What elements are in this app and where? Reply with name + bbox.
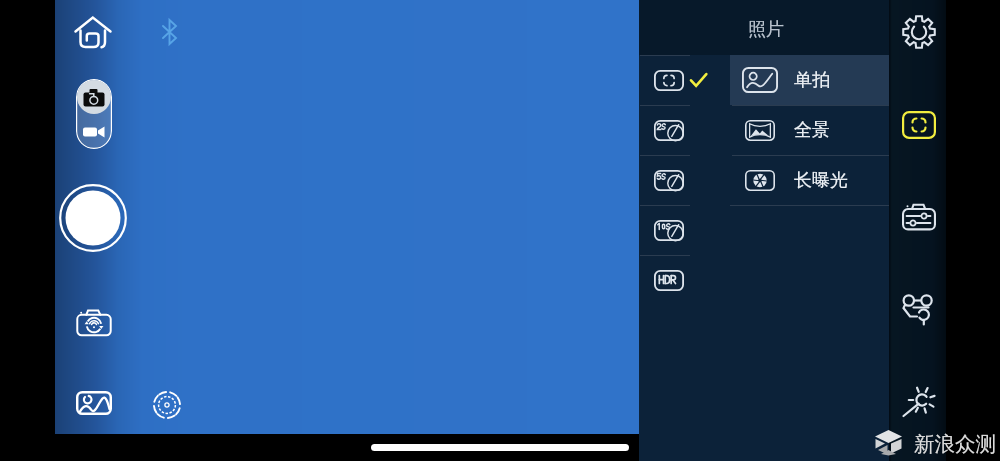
staticText: 单拍 (794, 69, 830, 92)
button[interactable]: 长曝光 (730, 155, 890, 205)
button[interactable]: Settings (892, 8, 946, 56)
other: Bluetooth (153, 15, 187, 49)
button[interactable]: Camera settings (892, 194, 946, 242)
button[interactable]: 全景 (730, 105, 890, 155)
button[interactable]: Focus (145, 383, 188, 426)
staticText: 照片 (748, 18, 784, 41)
button[interactable]: Shutter (59, 184, 127, 252)
button[interactable]: Effects (892, 379, 946, 427)
button[interactable]: Capture option (639, 255, 730, 305)
button[interactable]: Capture option (639, 155, 730, 205)
button[interactable]: Capture option (639, 55, 730, 105)
button[interactable]: Switch camera (67, 295, 121, 349)
staticText: 新浪众测 (914, 431, 996, 457)
button[interactable]: Home (72, 11, 114, 53)
button[interactable]: Aspect ratio (892, 101, 946, 149)
button[interactable]: Gallery (70, 379, 118, 427)
button[interactable]: 单拍 (730, 55, 890, 105)
button[interactable]: Capture option (639, 105, 730, 155)
button[interactable]: Photo video mode (76, 79, 112, 149)
staticText: 全景 (794, 119, 830, 142)
staticText: 长曝光 (794, 169, 848, 192)
button[interactable]: Capture option (639, 205, 730, 255)
button[interactable]: Connections (892, 286, 946, 334)
